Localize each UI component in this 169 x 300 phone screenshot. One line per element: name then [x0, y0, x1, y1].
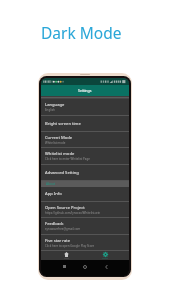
button[interactable]: Feedback — [41, 218, 129, 234]
staticText: About — [46, 182, 56, 186]
staticText: syncwavefree@gmail.com — [45, 227, 81, 231]
staticText: Feedback — [45, 221, 64, 227]
staticText: Bright screen time — [45, 121, 81, 127]
staticText: Open Source Project — [45, 205, 85, 211]
staticText: App Info — [45, 191, 62, 197]
button[interactable]: Language — [41, 99, 129, 115]
button[interactable]: Bright screen time — [41, 116, 129, 131]
staticText: https://github.com/lynxxxx/Whitelist.win — [45, 211, 101, 215]
staticText: Current Mode — [45, 135, 73, 141]
button[interactable]: Advanced Setting — [41, 165, 129, 180]
staticText: Language — [45, 102, 65, 108]
button[interactable]: Settings — [93, 251, 117, 260]
staticText: Click here to open Google Play Store — [45, 244, 95, 248]
staticText: Dark Mode — [41, 22, 122, 43]
staticText: English — [45, 108, 55, 112]
button[interactable]: Recents — [57, 260, 71, 273]
staticText: Settings — [78, 88, 92, 93]
staticText: Advanced Setting — [45, 170, 79, 176]
staticText: Click here to enter Whitelist Page — [45, 157, 90, 161]
button[interactable]: App Info — [41, 187, 129, 201]
button[interactable]: Home — [78, 260, 92, 273]
staticText: Whitelist mode — [45, 141, 66, 145]
staticText: Five star rate — [45, 238, 71, 244]
button[interactable]: Home — [54, 251, 78, 260]
button[interactable]: Current Mode — [41, 132, 129, 147]
button[interactable]: Back — [99, 260, 113, 273]
button[interactable]: Open Source Project — [41, 202, 129, 217]
button[interactable]: Five star rate — [41, 235, 129, 250]
staticText: Whitelist mode — [45, 151, 75, 157]
button[interactable]: Whitelist mode — [41, 148, 129, 164]
